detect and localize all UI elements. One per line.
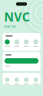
staticText: 智能门锁 xyxy=(4,25,16,28)
staticText: NVC xyxy=(4,9,30,25)
